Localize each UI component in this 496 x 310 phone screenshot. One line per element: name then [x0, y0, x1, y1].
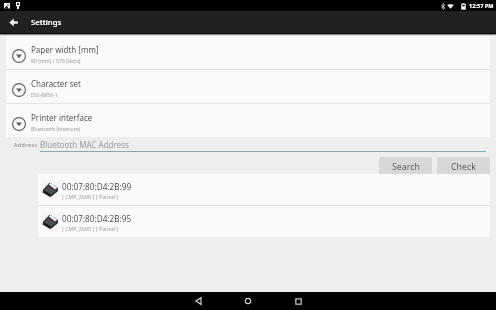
button[interactable]: 00:07:80:D4:2B:95 [38, 206, 490, 237]
staticText: 12:57 PM [469, 2, 494, 10]
button[interactable]: Home [238, 292, 258, 310]
staticText: Bluetooth (insecure) [31, 125, 81, 132]
staticText: Printer interface [31, 112, 93, 123]
button[interactable]: 00:07:80:D4:2B:99 [38, 174, 490, 205]
staticText: Address : [14, 141, 42, 148]
staticText: 00:07:80:D4:2B:99 [62, 181, 132, 192]
button[interactable]: Check [437, 157, 490, 174]
staticText: [ CMP_2b99 ] [ Paired ] [62, 194, 119, 201]
staticText: ISO-8859-1 [31, 91, 58, 98]
staticText: Paper width [mm] [31, 44, 99, 55]
staticText: Settings [31, 17, 62, 28]
button[interactable]: Printer interface [6, 104, 490, 137]
button[interactable]: Back [188, 292, 208, 310]
staticText: [ CMP_2b95 ] [ Paired ] [62, 226, 119, 233]
button[interactable]: Recents [288, 292, 308, 310]
staticText: 80 [mm] / 576 [dots] [31, 57, 81, 64]
staticText: 00:07:80:D4:2B:95 [62, 213, 132, 224]
staticText: Check [451, 161, 476, 173]
button[interactable]: Search [379, 157, 432, 174]
button[interactable]: Character set [6, 70, 490, 103]
button[interactable]: Paper width [mm] [6, 36, 490, 69]
staticText: Bluetooth MAC Address [40, 139, 129, 150]
button[interactable]: Back [3, 12, 24, 33]
staticText: Search [392, 161, 420, 173]
staticText: Character set [31, 78, 81, 89]
